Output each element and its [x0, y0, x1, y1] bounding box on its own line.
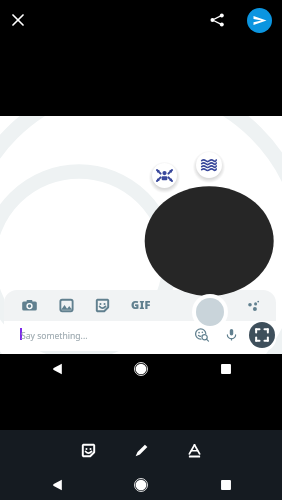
staticText: Say something... — [21, 330, 88, 342]
button[interactable]: Draw — [133, 442, 150, 459]
button[interactable]: Close — [6, 8, 30, 32]
button[interactable]: Stickers — [80, 442, 97, 459]
button[interactable]: Share — [205, 8, 229, 32]
button[interactable]: Back — [49, 361, 65, 377]
button[interactable]: GIF — [127, 294, 155, 315]
button[interactable]: Home — [133, 477, 149, 493]
button[interactable]: Voice input — [224, 327, 239, 342]
button[interactable]: Gallery — [58, 297, 75, 314]
button[interactable]: Recent apps — [218, 477, 234, 493]
button[interactable]: Stickers — [94, 297, 111, 314]
button[interactable]: Fullscreen — [249, 322, 275, 348]
button[interactable]: Capture — [192, 294, 228, 330]
button[interactable]: Camera — [21, 297, 38, 314]
button[interactable]: Send — [247, 8, 272, 33]
button[interactable]: Search emoji — [195, 328, 210, 343]
button[interactable]: Recent apps — [218, 361, 234, 377]
button[interactable]: Add text — [186, 442, 203, 459]
staticText: GIF — [131, 297, 151, 312]
button[interactable]: Water effect — [196, 152, 222, 178]
button[interactable]: Portrait retouch — [152, 163, 177, 188]
button[interactable]: Home — [133, 361, 149, 377]
button[interactable]: Back — [49, 477, 65, 493]
